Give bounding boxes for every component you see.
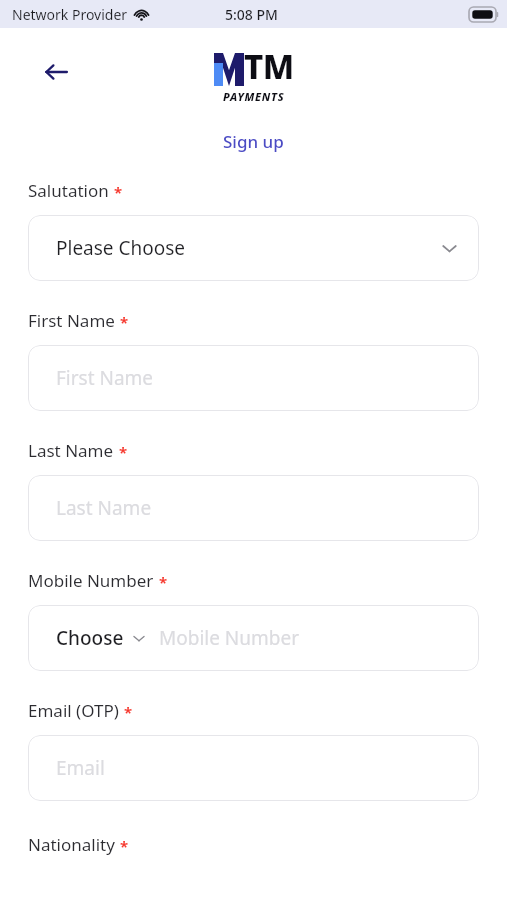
staticText: Nationality [28,833,115,856]
staticText: Last Name [28,439,114,462]
staticText: * [120,836,129,856]
staticText: Salutation [28,179,109,202]
button[interactable]: Sign up [223,130,284,153]
staticText: 5:08 PM [225,5,278,24]
staticText: Please Choose [56,235,442,261]
button[interactable]: First Name [28,345,479,411]
staticText: Choose [56,625,124,651]
staticText: * [119,442,128,462]
button[interactable]: Email [28,735,479,801]
staticText: PAYMENTS [223,89,285,104]
staticText: * [124,702,133,722]
staticText: Mobile Number [159,625,300,651]
staticText: Last Name [56,495,152,521]
staticText: * [120,312,129,332]
staticText: Sign up [223,130,284,153]
staticText: First Name [56,365,154,391]
staticText: * [159,572,168,592]
staticText: TM [244,44,294,89]
staticText: Email [56,755,105,781]
staticText: Email (OTP) [28,699,119,722]
button[interactable]: Choose [28,605,479,671]
staticText: Mobile Number [28,569,154,592]
staticText: First Name [28,309,115,332]
button[interactable]: Please Choose [28,215,479,281]
staticText: Network Provider [12,5,128,24]
button[interactable]: Last Name [28,475,479,541]
button[interactable]: Back [34,50,78,94]
staticText: * [114,182,123,202]
